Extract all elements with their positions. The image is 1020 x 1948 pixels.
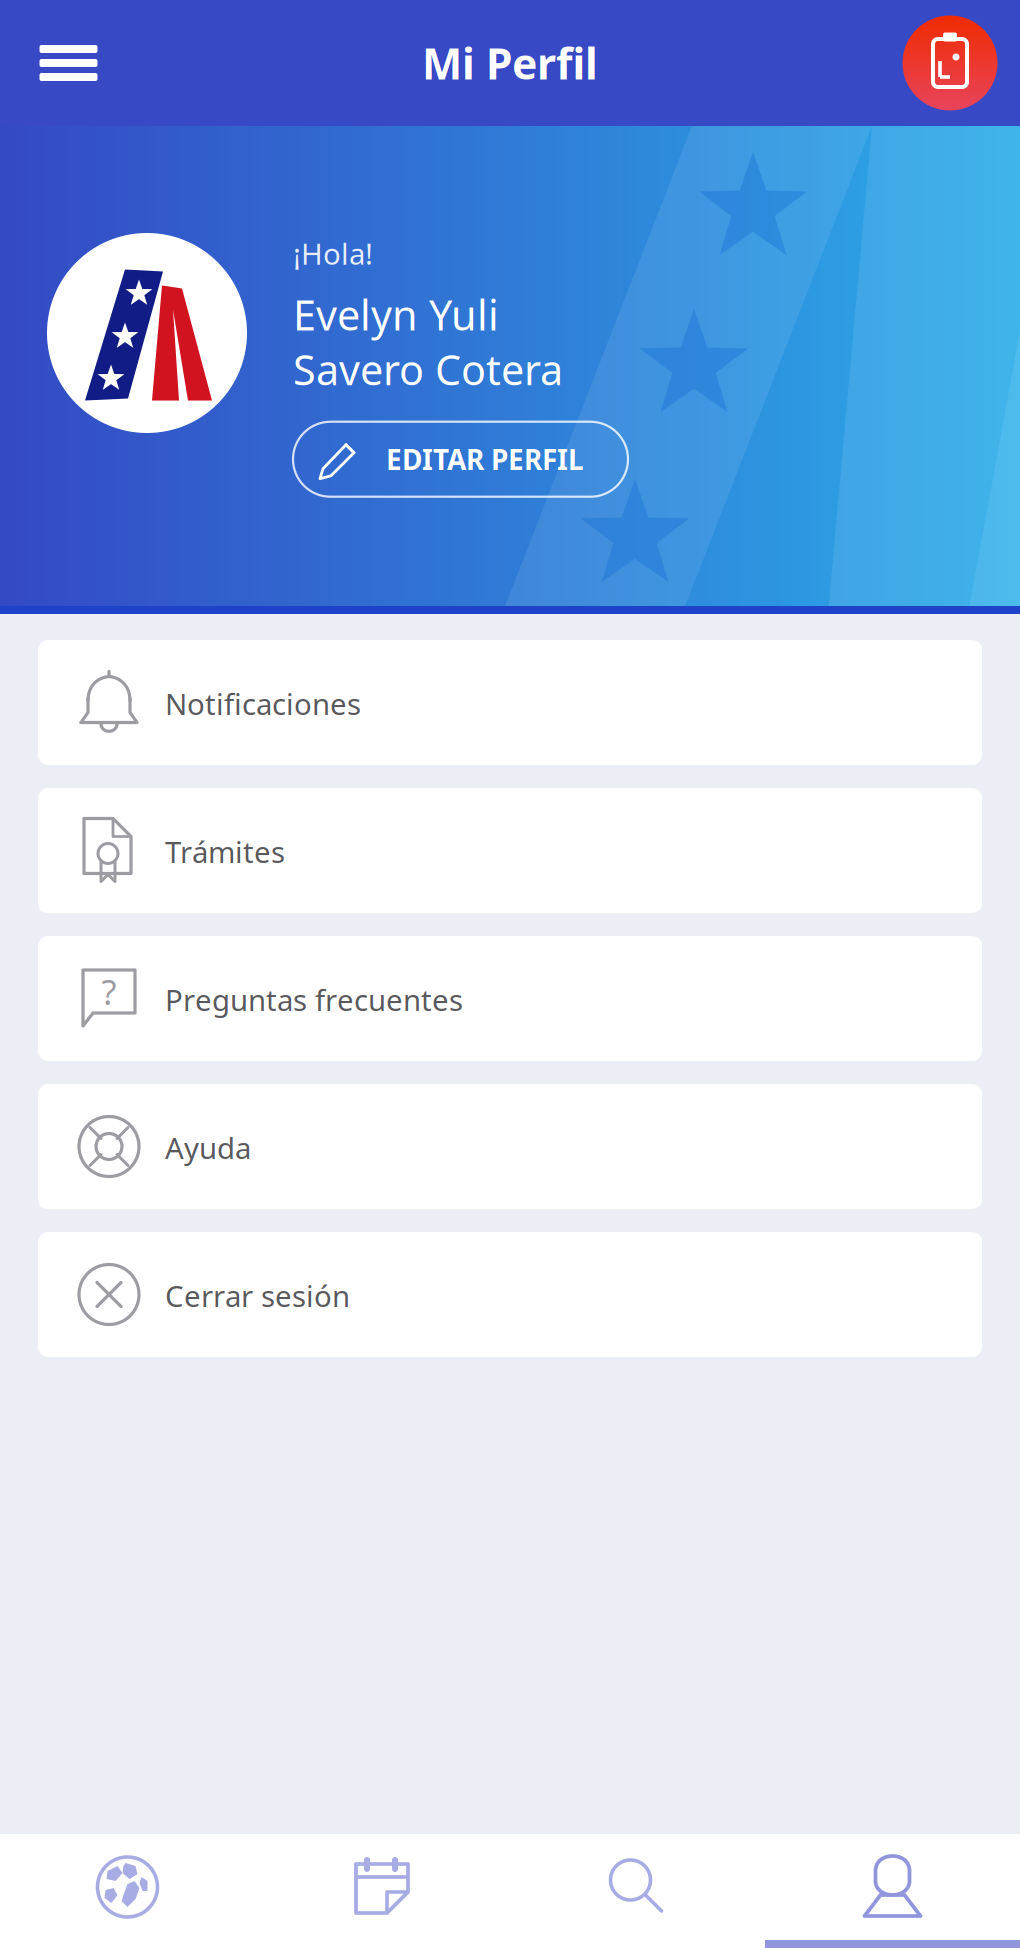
staticText: Trámites (165, 832, 285, 871)
button[interactable]: EDITAR PERFIL (293, 422, 628, 497)
staticText: Cerrar sesión (165, 1276, 350, 1315)
button[interactable]: Ayuda (38, 1084, 982, 1209)
button[interactable]: Mi credencial (880, 0, 1020, 126)
staticText: Notificaciones (165, 684, 361, 723)
button[interactable]: Notificaciones (38, 640, 982, 765)
staticText: Savero Cotera (293, 342, 563, 397)
staticText: ¡Hola! (293, 234, 373, 273)
staticText: Preguntas frecuentes (165, 980, 463, 1019)
button[interactable]: Inicio (0, 1834, 255, 1948)
button[interactable]: Mi Perfil (765, 1834, 1020, 1948)
button[interactable]: Trámites (38, 788, 982, 913)
staticText: Evelyn Yuli (293, 287, 499, 342)
button[interactable]: Buscar (510, 1834, 765, 1948)
button[interactable]: Menú (0, 0, 137, 126)
button[interactable]: Cerrar sesión (38, 1232, 982, 1357)
staticText: ? (101, 968, 116, 1014)
staticText: Ayuda (165, 1128, 251, 1167)
button[interactable]: ? (38, 936, 982, 1061)
staticText: Mi Perfil (422, 35, 598, 91)
staticText: EDITAR PERFIL (386, 441, 584, 478)
button[interactable]: Trámites (255, 1834, 510, 1948)
